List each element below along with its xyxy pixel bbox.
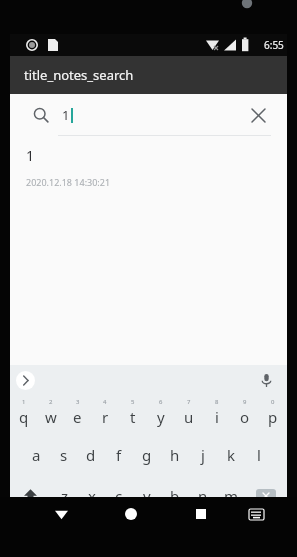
button[interactable]: d	[77, 435, 105, 475]
button[interactable]: Switch keyboard	[234, 497, 278, 531]
button[interactable]: Search	[28, 102, 54, 128]
staticText: w	[45, 407, 57, 427]
button[interactable]: v	[133, 475, 161, 516]
staticText: m	[224, 486, 239, 506]
staticText: g	[142, 445, 152, 465]
staticText: k	[227, 445, 236, 465]
staticText: 8	[215, 398, 219, 406]
button[interactable]: Search	[237, 516, 287, 557]
staticText: r	[102, 407, 109, 427]
button[interactable]: 1	[10, 136, 287, 198]
staticText: v	[143, 486, 151, 506]
staticText: q	[19, 407, 29, 427]
staticText: z	[61, 486, 69, 506]
staticText: b	[170, 486, 180, 506]
button[interactable]: 5	[119, 395, 147, 435]
button[interactable]: Expand suggestions	[16, 371, 35, 390]
button[interactable]: Backspace	[245, 475, 287, 516]
staticText: t	[130, 407, 136, 427]
staticText: u	[184, 407, 194, 427]
staticText: 9	[243, 398, 247, 406]
staticText: s	[60, 445, 68, 465]
staticText: 1	[26, 146, 35, 165]
staticText: p	[268, 407, 278, 427]
staticText: 4	[103, 398, 107, 406]
button[interactable]: 2	[37, 395, 64, 435]
staticText: 1	[22, 398, 26, 406]
button[interactable]: n	[189, 475, 217, 516]
button[interactable]: g	[133, 435, 161, 475]
staticText: 7	[187, 398, 191, 406]
button[interactable]: 8	[203, 395, 231, 435]
button[interactable]: s	[50, 435, 77, 475]
button[interactable]: 1	[10, 395, 37, 435]
button[interactable]: j	[189, 435, 217, 475]
staticText: l	[257, 445, 261, 465]
staticText: c	[115, 486, 123, 506]
button[interactable]: m	[217, 475, 245, 516]
staticText: 2	[49, 398, 53, 406]
staticText: h	[170, 445, 180, 465]
button[interactable]: l	[245, 435, 273, 475]
button[interactable]: 9	[231, 395, 259, 435]
button[interactable]: b	[161, 475, 189, 516]
button[interactable]: c	[105, 475, 133, 516]
staticText: 6:55	[264, 38, 284, 52]
button[interactable]: Space	[103, 516, 213, 557]
button[interactable]: Back	[40, 497, 83, 531]
button[interactable]: 4	[91, 395, 119, 435]
button[interactable]: x	[78, 475, 105, 516]
staticText: title_notes_search	[24, 66, 134, 84]
staticText: o	[240, 407, 250, 427]
button[interactable]: h	[161, 435, 189, 475]
button[interactable]: Voice input	[255, 369, 277, 391]
staticText: f	[116, 445, 122, 465]
staticText: 6	[159, 398, 163, 406]
button[interactable]: 3	[64, 395, 91, 435]
staticText: i	[215, 407, 219, 427]
staticText: x	[88, 486, 96, 506]
button[interactable]: 7	[175, 395, 203, 435]
button[interactable]: a	[23, 435, 50, 475]
button[interactable]: z	[51, 475, 78, 516]
button[interactable]: 6	[147, 395, 175, 435]
button[interactable]: title_notes_search	[10, 56, 287, 94]
button[interactable]: k	[217, 435, 245, 475]
staticText: 3	[76, 398, 80, 406]
button[interactable]: Shift	[10, 475, 51, 516]
staticText: 1	[62, 106, 70, 124]
staticText: e	[73, 407, 82, 427]
staticText: 5	[131, 398, 135, 406]
button[interactable]: f	[105, 435, 133, 475]
staticText: a	[32, 445, 41, 465]
staticText: 2020.12.18 14:30:21	[26, 176, 111, 188]
staticText: n	[198, 486, 208, 506]
button[interactable]: Home	[109, 497, 153, 531]
staticText: j	[201, 445, 205, 465]
button[interactable]: Recent apps	[179, 497, 223, 531]
button[interactable]: ,	[53, 516, 77, 557]
button[interactable]: 0	[259, 395, 287, 435]
button[interactable]: Clear search	[245, 102, 271, 128]
staticText: d	[86, 445, 96, 465]
staticText: 0	[271, 398, 275, 406]
staticText: y	[157, 407, 165, 427]
